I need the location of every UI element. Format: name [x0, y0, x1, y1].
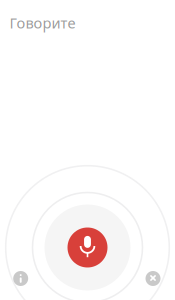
button[interactable]: Record: [67, 227, 107, 267]
button[interactable]: Info: [8, 265, 34, 291]
staticText: Говорите: [9, 13, 75, 32]
button[interactable]: Close: [140, 265, 166, 291]
